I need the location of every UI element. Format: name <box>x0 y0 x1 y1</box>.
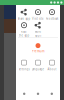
staticText: the app <box>18 34 29 37</box>
button[interactable]: Rate <box>17 22 31 37</box>
button[interactable]: Share app <box>17 7 31 22</box>
button[interactable]: Language <box>31 57 45 72</box>
staticText: Premium <box>32 49 44 53</box>
staticText: Language <box>31 67 44 71</box>
staticText: About <box>47 67 56 71</box>
staticText: Feedback <box>46 17 58 20</box>
staticText: Share app <box>17 17 30 20</box>
button[interactable]: About <box>45 57 59 72</box>
button[interactable]: Feedback <box>45 7 59 22</box>
button[interactable]: More <box>31 22 45 37</box>
staticText: Visit site <box>32 17 44 20</box>
staticText: Settings <box>18 67 29 71</box>
staticText: Rate <box>21 30 27 33</box>
button[interactable]: Premium <box>31 40 45 55</box>
button[interactable]: Settings <box>17 57 31 72</box>
staticText: apps <box>35 34 41 37</box>
button[interactable]: Visit site <box>31 7 45 22</box>
staticText: More <box>34 30 41 33</box>
